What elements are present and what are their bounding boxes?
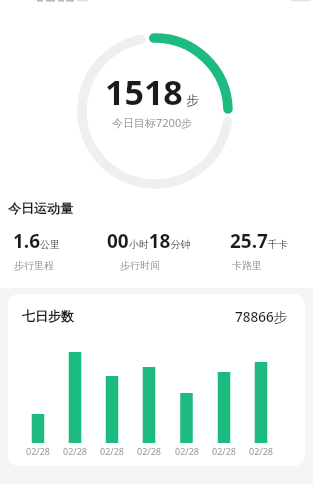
button[interactable]: 七日步数 <box>8 294 305 466</box>
staticText: 1518 步 <box>105 69 200 115</box>
staticText: 02/28 <box>26 445 50 457</box>
staticText: 00小时18分钟 <box>107 228 191 254</box>
staticText: 78866步 <box>235 308 288 326</box>
staticText: 步行里程 <box>14 259 54 272</box>
staticText: 卡路里 <box>232 259 262 272</box>
staticText: 02/28 <box>249 445 273 457</box>
staticText: 1.6公里 <box>13 228 61 254</box>
staticText: 02/28 <box>175 445 199 457</box>
staticText: 七日步数 <box>22 308 74 324</box>
staticText: 02/28 <box>137 445 161 457</box>
staticText: 今日运动量 <box>8 200 73 216</box>
staticText: 25.7千卡 <box>230 228 288 254</box>
staticText: 步行时间 <box>120 259 160 272</box>
staticText: 02/28 <box>63 445 87 457</box>
staticText: 02/28 <box>212 445 236 457</box>
staticText: 今日目标7200步 <box>112 115 193 130</box>
staticText: 02/28 <box>100 445 124 457</box>
